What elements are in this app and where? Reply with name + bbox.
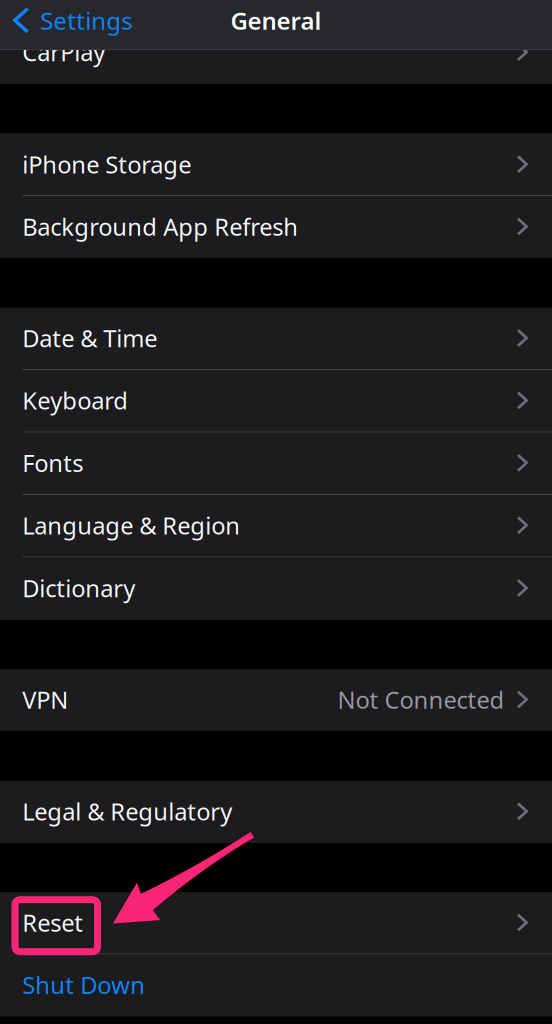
staticText: Fonts [22, 447, 83, 479]
staticText: iPhone Storage [22, 148, 191, 180]
staticText: Date & Time [22, 322, 157, 354]
button[interactable]: Shut Down [0, 954, 552, 1016]
staticText: Reset [22, 906, 83, 939]
button[interactable]: Dictionary [0, 557, 552, 619]
staticText: General [230, 4, 321, 37]
staticText: Language & Region [22, 509, 240, 541]
staticText: Keyboard [22, 384, 128, 416]
button[interactable]: Background App Refresh [0, 196, 552, 258]
staticText: Shut Down [22, 969, 145, 1001]
button[interactable]: Date & Time [0, 308, 552, 369]
staticText: CarPlay [22, 36, 105, 68]
staticText: VPN [22, 683, 68, 716]
button[interactable]: Fonts [0, 433, 552, 494]
staticText: Settings [40, 4, 132, 37]
button[interactable]: VPN [0, 669, 552, 730]
staticText: Background App Refresh [22, 210, 298, 243]
button[interactable]: Settings [0, 0, 146, 41]
button[interactable]: Keyboard [0, 370, 552, 432]
staticText: Dictionary [22, 572, 135, 604]
button[interactable]: Language & Region [0, 495, 552, 556]
button[interactable]: Reset [0, 892, 552, 953]
staticText: Not Connected [338, 683, 505, 716]
button[interactable]: CarPlay [0, 22, 552, 84]
button[interactable]: Legal & Regulatory [0, 781, 552, 842]
button[interactable]: iPhone Storage [0, 134, 552, 196]
staticText: Legal & Regulatory [22, 795, 232, 827]
